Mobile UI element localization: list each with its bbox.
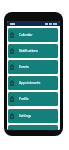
button[interactable]: Notifications <box>8 44 58 58</box>
button[interactable]: Appointments <box>8 76 58 90</box>
button[interactable]: Profile <box>8 92 58 106</box>
button[interactable]: Help <box>8 125 58 130</box>
staticText: Calendar <box>19 33 33 37</box>
staticText: Profile <box>19 97 29 101</box>
staticText: Settings <box>19 114 32 118</box>
staticText: Appointments <box>19 81 41 85</box>
button[interactable]: Settings <box>8 109 58 123</box>
button[interactable]: Calendar <box>8 28 58 42</box>
staticText: Notifications <box>19 49 38 53</box>
button[interactable]: Events <box>8 60 58 74</box>
staticText: Events <box>19 65 29 69</box>
